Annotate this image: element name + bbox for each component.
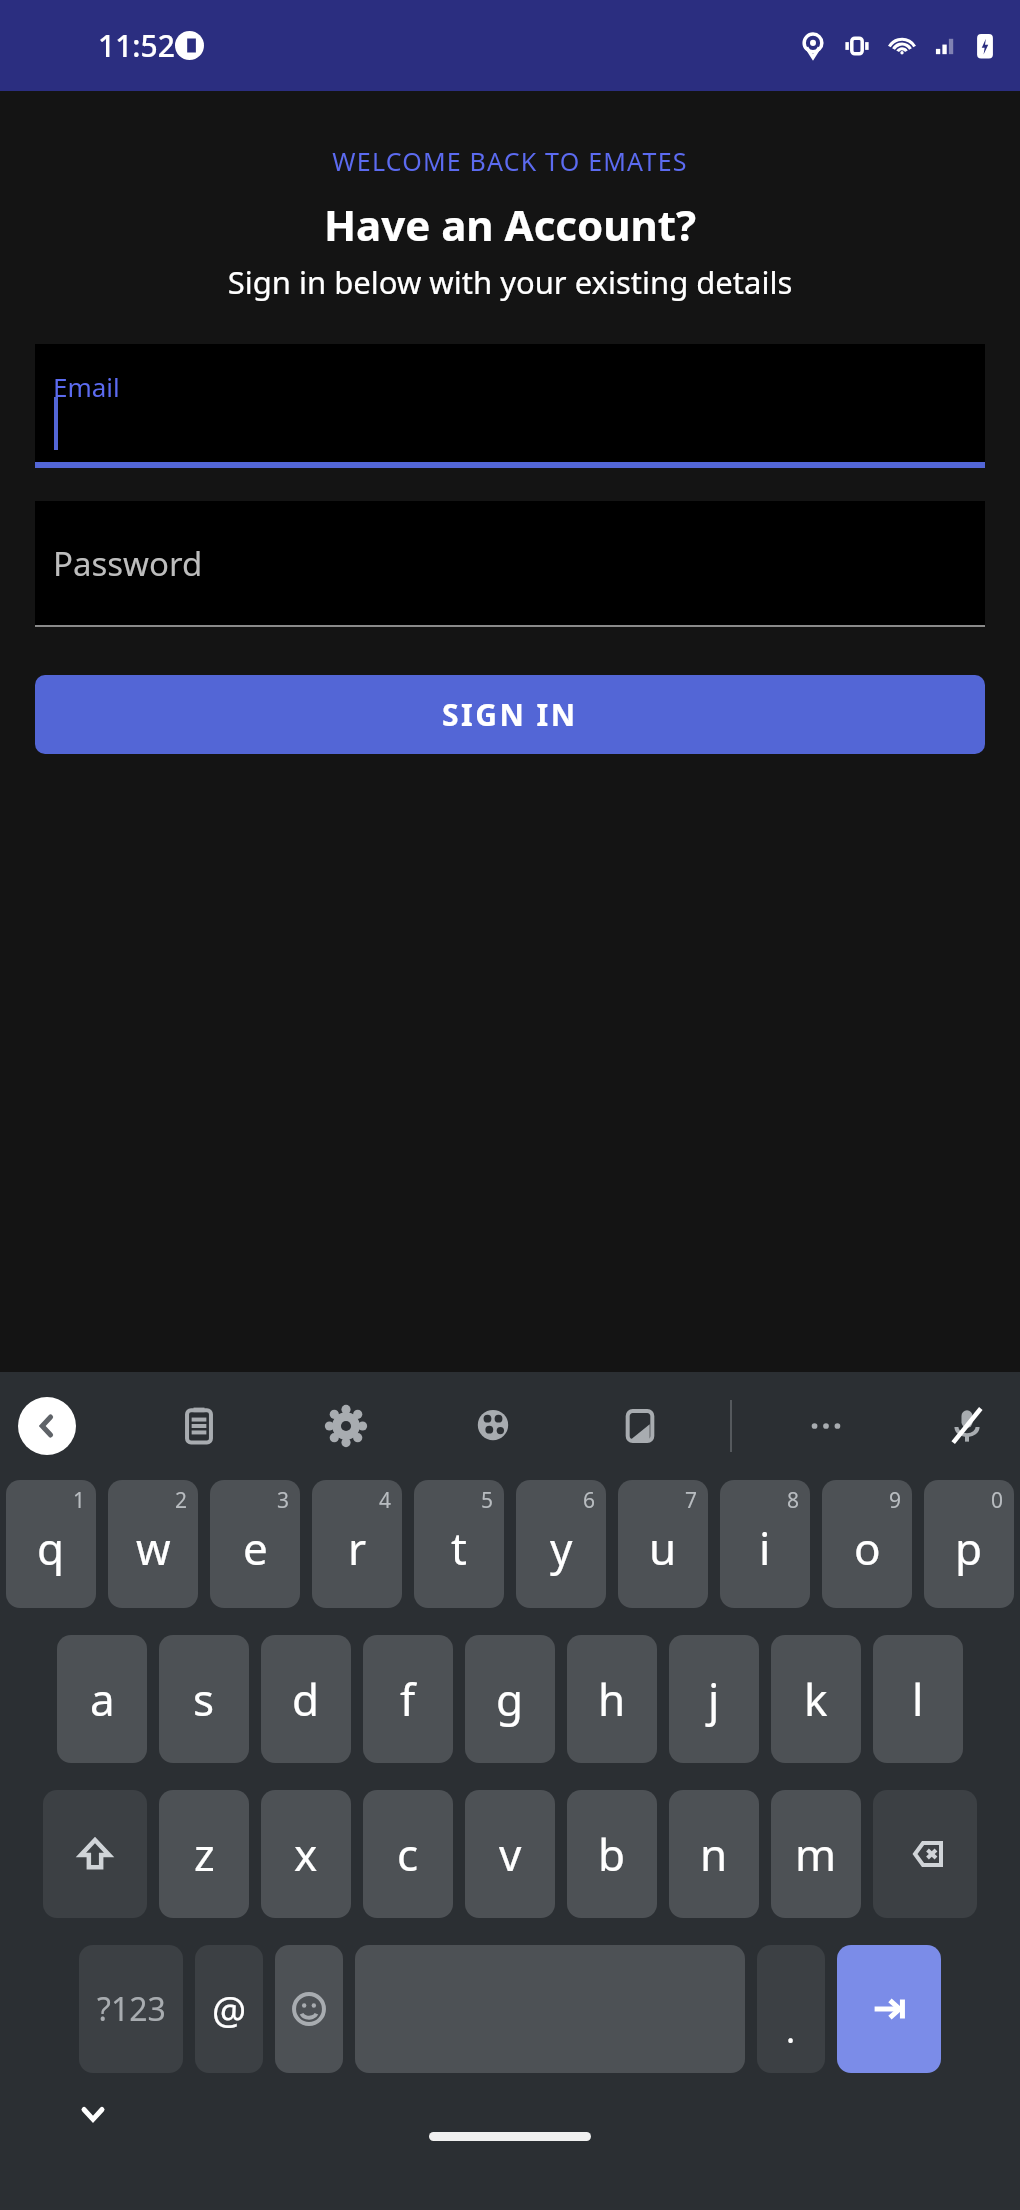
- staticText: g: [496, 1669, 524, 1729]
- staticText: k: [804, 1669, 828, 1729]
- button[interactable]: Shift: [43, 1790, 147, 1918]
- staticText: 0: [991, 1486, 1004, 1515]
- button[interactable]: m: [771, 1790, 861, 1918]
- button[interactable]: k: [771, 1635, 861, 1763]
- button[interactable]: More options: [795, 1395, 857, 1457]
- staticText: m: [795, 1824, 837, 1884]
- staticText: a: [90, 1669, 115, 1729]
- staticText: x: [294, 1824, 318, 1884]
- staticText: s: [193, 1669, 215, 1729]
- staticText: 1: [73, 1486, 86, 1515]
- staticText: r: [348, 1518, 367, 1578]
- staticText: l: [912, 1669, 924, 1729]
- staticText: @: [212, 1983, 247, 2035]
- button[interactable]: 8: [720, 1480, 810, 1608]
- staticText: 4: [379, 1486, 392, 1515]
- button[interactable]: Email: [35, 344, 985, 468]
- staticText: f: [400, 1669, 416, 1729]
- staticText: ?123: [97, 1987, 166, 2031]
- button[interactable]: a: [57, 1635, 147, 1763]
- staticText: 2: [175, 1486, 188, 1515]
- button[interactable]: s: [159, 1635, 249, 1763]
- staticText: 5: [481, 1486, 494, 1515]
- button[interactable]: .: [757, 1945, 825, 2073]
- staticText: 8: [787, 1486, 800, 1515]
- staticText: Password: [53, 541, 203, 586]
- button[interactable]: Voice input off: [936, 1395, 998, 1457]
- button[interactable]: Settings: [315, 1395, 377, 1457]
- staticText: t: [451, 1518, 467, 1578]
- button[interactable]: 4: [312, 1480, 402, 1608]
- button[interactable]: Clipboard: [168, 1395, 230, 1457]
- staticText: c: [397, 1824, 419, 1884]
- button[interactable]: x: [261, 1790, 351, 1918]
- staticText: z: [194, 1824, 215, 1884]
- staticText: i: [759, 1518, 771, 1578]
- button[interactable]: 7: [618, 1480, 708, 1608]
- staticText: b: [598, 1824, 626, 1884]
- staticText: o: [854, 1518, 881, 1578]
- staticText: 7: [685, 1486, 698, 1515]
- button[interactable]: c: [363, 1790, 453, 1918]
- button[interactable]: Next: [837, 1945, 941, 2073]
- button[interactable]: Emoji: [275, 1945, 343, 2073]
- staticText: 3: [277, 1486, 290, 1515]
- staticText: p: [955, 1518, 983, 1578]
- staticText: h: [598, 1669, 626, 1729]
- button[interactable]: b: [567, 1790, 657, 1918]
- button[interactable]: f: [363, 1635, 453, 1763]
- button[interactable]: 2: [108, 1480, 198, 1608]
- staticText: n: [700, 1824, 728, 1884]
- button[interactable]: 1: [6, 1480, 96, 1608]
- button[interactable]: 9: [822, 1480, 912, 1608]
- staticText: e: [243, 1518, 268, 1578]
- button[interactable]: j: [669, 1635, 759, 1763]
- staticText: 6: [583, 1486, 596, 1515]
- staticText: j: [708, 1669, 720, 1729]
- button[interactable]: d: [261, 1635, 351, 1763]
- staticText: WELCOME BACK TO EMATES: [0, 144, 1020, 178]
- button[interactable]: Password: [35, 501, 985, 627]
- button[interactable]: ?123: [79, 1945, 183, 2073]
- staticText: 11:52: [98, 25, 175, 66]
- staticText: v: [499, 1824, 522, 1884]
- button[interactable]: @: [195, 1945, 263, 2073]
- button[interactable]: g: [465, 1635, 555, 1763]
- staticText: d: [292, 1669, 320, 1729]
- button[interactable]: 6: [516, 1480, 606, 1608]
- button[interactable]: l: [873, 1635, 963, 1763]
- button[interactable]: 5: [414, 1480, 504, 1608]
- button[interactable]: h: [567, 1635, 657, 1763]
- staticText: SIGN IN: [442, 694, 578, 735]
- staticText: Email: [53, 369, 120, 404]
- staticText: u: [649, 1518, 677, 1578]
- staticText: Sign in below with your existing details: [0, 261, 1020, 303]
- button[interactable]: v: [465, 1790, 555, 1918]
- button[interactable]: Sticker: [609, 1395, 671, 1457]
- button[interactable]: z: [159, 1790, 249, 1918]
- staticText: .: [786, 2007, 796, 2053]
- button[interactable]: n: [669, 1790, 759, 1918]
- button[interactable]: 3: [210, 1480, 300, 1608]
- staticText: y: [550, 1518, 573, 1578]
- button[interactable]: Backspace: [873, 1790, 977, 1918]
- button[interactable]: SIGN IN: [35, 675, 985, 754]
- button[interactable]: 0: [924, 1480, 1014, 1608]
- button[interactable]: Theme: [462, 1395, 524, 1457]
- staticText: q: [37, 1518, 65, 1578]
- staticText: w: [136, 1518, 171, 1578]
- staticText: Have an Account?: [0, 196, 1020, 253]
- staticText: 9: [889, 1486, 902, 1515]
- button[interactable]: Back: [18, 1397, 76, 1455]
